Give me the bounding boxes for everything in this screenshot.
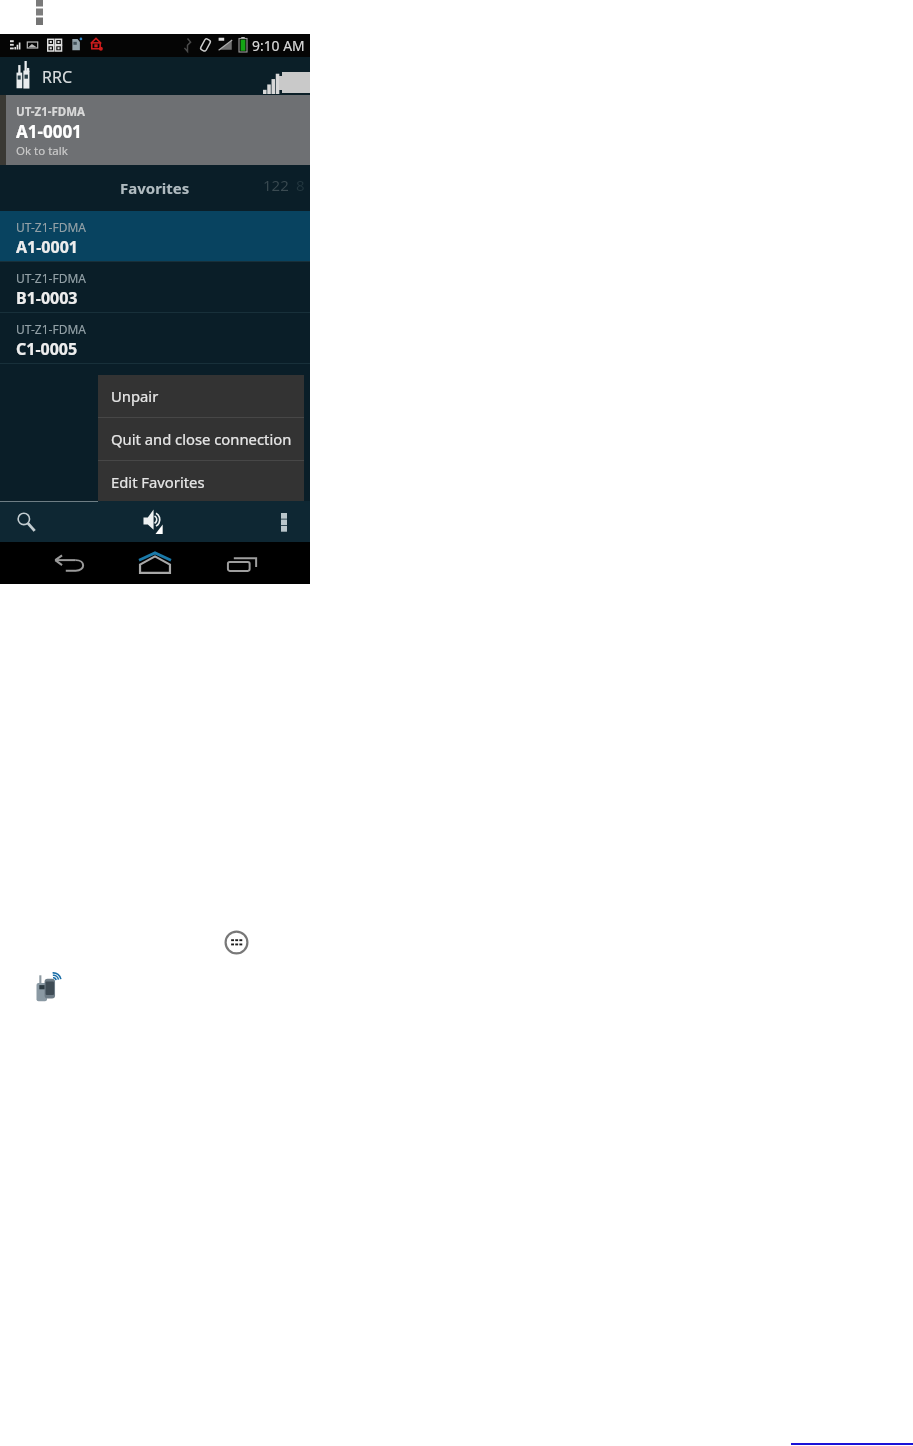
staticText: Ok to talk [16, 143, 68, 159]
button[interactable]: Back [46, 546, 92, 580]
button[interactable]: UT-Z1-FDMA [0, 262, 310, 312]
staticText: A1-0001 [16, 120, 82, 143]
staticText: B1-0003 [16, 287, 78, 309]
staticText: UT-Z1-FDMA [16, 219, 86, 235]
button[interactable]: Quit and close connection [98, 418, 304, 460]
button[interactable]: Search [4, 505, 48, 539]
button[interactable]: UT-Z1-FDMA [0, 95, 310, 165]
staticText: A1-0001 [16, 236, 78, 258]
staticText: Favorites [120, 178, 190, 198]
staticText: 9:10 AM [252, 36, 305, 55]
staticText: Quit and close connection [111, 429, 292, 449]
staticText: Unpair [111, 386, 159, 406]
button[interactable]: Apps [224, 930, 249, 955]
button[interactable]: UT-Z1-FDMA [0, 313, 310, 363]
button[interactable]: Volume [133, 504, 177, 540]
staticText: Edit Favorites [111, 472, 205, 492]
button[interactable]: More options [266, 505, 302, 539]
staticText: UT-Z1-FDMA [16, 321, 86, 337]
staticText: RRC [42, 66, 73, 88]
button[interactable]: Edit Favorites [98, 461, 304, 503]
button[interactable]: RRC [0, 57, 310, 95]
button[interactable]: Recents [219, 546, 265, 580]
staticText: C1-0005 [16, 338, 78, 360]
button[interactable]: Home [132, 546, 178, 580]
button[interactable]: RRC app [33, 969, 68, 1004]
staticText: 122 [263, 175, 289, 195]
staticText: UT-Z1-FDMA [16, 104, 85, 120]
button[interactable]: Unpair [98, 375, 304, 417]
staticText: 8 [296, 175, 305, 195]
button[interactable]: UT-Z1-FDMA [0, 211, 310, 261]
button[interactable]: Favorites [0, 165, 310, 211]
staticText: UT-Z1-FDMA [16, 270, 86, 286]
